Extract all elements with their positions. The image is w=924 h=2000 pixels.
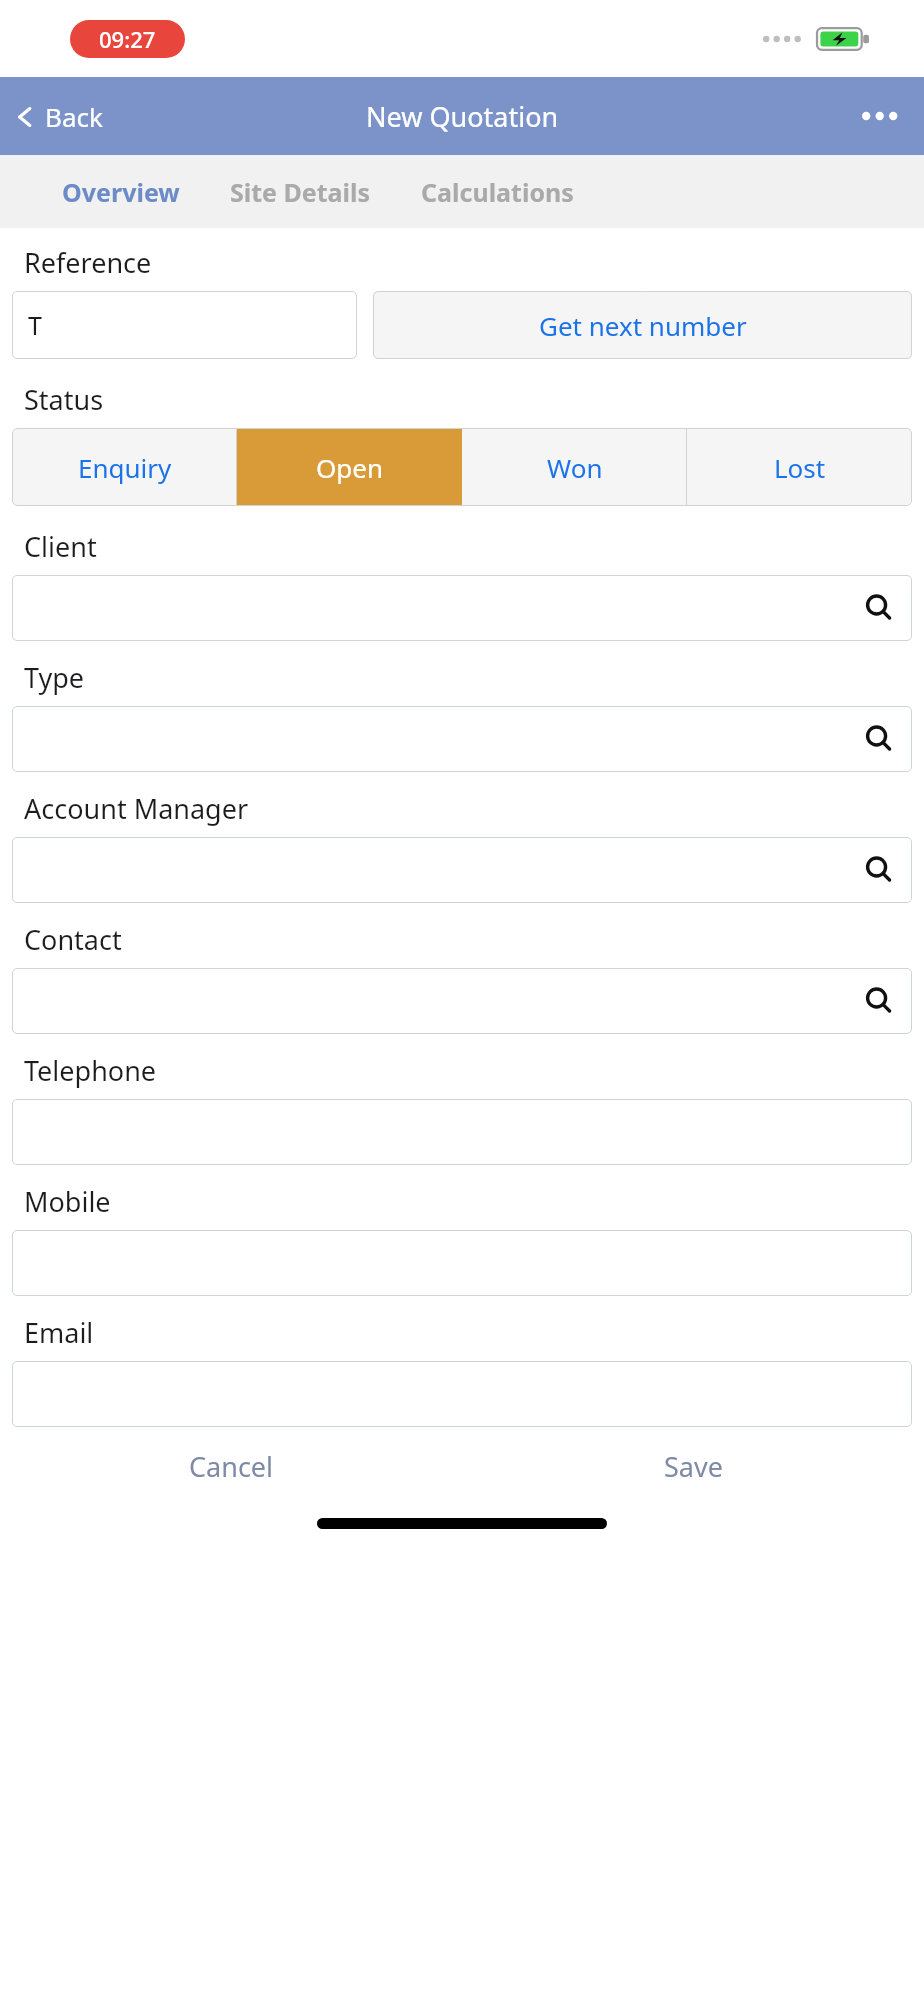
button[interactable]: Enquiry xyxy=(12,428,237,506)
button[interactable]: Search Contact xyxy=(12,968,912,1034)
staticText: Get next number xyxy=(539,308,747,343)
staticText: Won xyxy=(547,450,603,485)
button[interactable]: Back xyxy=(0,91,119,142)
other: Search Type xyxy=(864,724,894,754)
button[interactable] xyxy=(12,1099,912,1165)
staticText: Cancel xyxy=(189,1448,274,1485)
staticText: Type xyxy=(24,659,85,696)
staticText: Telephone xyxy=(24,1052,157,1089)
button[interactable]: Open xyxy=(237,428,462,506)
button[interactable]: Search Account Manager xyxy=(12,837,912,903)
button[interactable]: T xyxy=(12,291,357,359)
button[interactable] xyxy=(12,1361,912,1427)
staticText: Status xyxy=(24,381,104,418)
button[interactable]: Lost xyxy=(687,428,912,506)
button[interactable]: Search Client xyxy=(12,575,912,641)
button[interactable]: Cancel xyxy=(0,1427,462,1505)
other: Search Account Manager xyxy=(864,855,894,885)
staticText: T xyxy=(28,308,42,342)
button[interactable]: Search Type xyxy=(12,706,912,772)
button[interactable]: More options xyxy=(840,93,924,139)
staticText: Overview xyxy=(62,175,180,209)
button[interactable]: Site Details xyxy=(230,165,371,219)
button[interactable]: Won xyxy=(462,428,687,506)
button[interactable]: Overview xyxy=(62,165,180,219)
staticText: Client xyxy=(24,528,97,565)
staticText: Enquiry xyxy=(78,450,172,485)
staticText: Lost xyxy=(774,450,826,485)
staticText: Save xyxy=(664,1448,723,1485)
staticText: Email xyxy=(24,1314,94,1351)
button[interactable]: Get next number xyxy=(373,291,912,359)
staticText: Calculations xyxy=(421,175,574,209)
staticText: Account Manager xyxy=(24,790,249,827)
staticText: Site Details xyxy=(230,175,371,209)
other: Search Contact xyxy=(864,986,894,1016)
other: Search Client xyxy=(864,593,894,623)
staticText: Reference xyxy=(24,244,152,281)
staticText: Back xyxy=(45,99,103,134)
button[interactable]: Calculations xyxy=(421,165,574,219)
staticText: New Quotation xyxy=(366,98,559,135)
button[interactable] xyxy=(12,1230,912,1296)
staticText: Mobile xyxy=(24,1183,111,1220)
button[interactable]: Save xyxy=(462,1427,924,1505)
staticText: Open xyxy=(316,450,384,485)
staticText: Contact xyxy=(24,921,122,958)
staticText: 09:27 xyxy=(99,24,156,54)
